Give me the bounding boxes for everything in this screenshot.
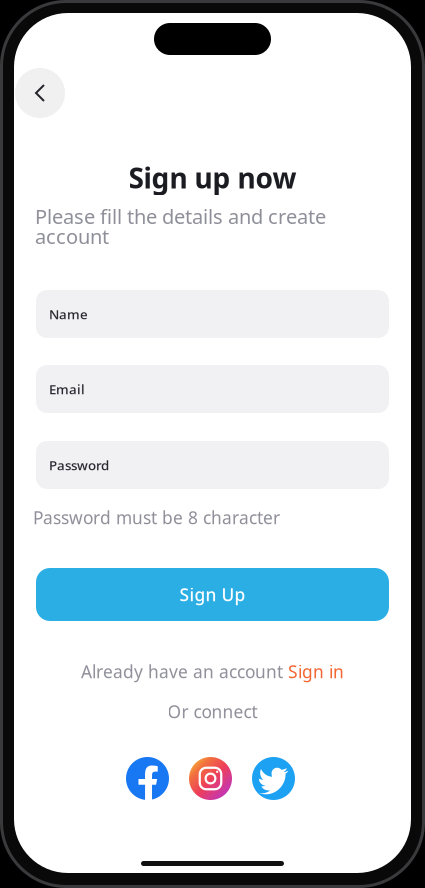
staticText: Sign Up bbox=[179, 583, 245, 606]
staticText: Password must be 8 character bbox=[33, 506, 280, 529]
staticText: Name bbox=[49, 305, 88, 323]
button[interactable]: Continue with Twitter bbox=[252, 757, 295, 800]
button[interactable]: Continue with Instagram bbox=[189, 757, 232, 800]
staticText: account bbox=[35, 223, 109, 250]
staticText: Already have an account bbox=[81, 660, 288, 683]
staticText: Sign up now bbox=[128, 159, 296, 196]
staticText: Sign in bbox=[288, 660, 344, 683]
staticText: Email bbox=[49, 380, 85, 398]
staticText: Please fill the details and create bbox=[35, 203, 326, 230]
button[interactable]: Sign in bbox=[288, 660, 344, 683]
button[interactable]: Sign Up bbox=[36, 568, 389, 621]
button[interactable]: Name bbox=[36, 290, 389, 338]
staticText: Or connect bbox=[167, 700, 257, 723]
button[interactable]: Password bbox=[36, 441, 389, 489]
button[interactable]: Back bbox=[15, 68, 65, 118]
button[interactable]: Continue with Facebook bbox=[126, 757, 169, 800]
staticText: Password bbox=[49, 456, 109, 474]
button[interactable]: Email bbox=[36, 365, 389, 413]
